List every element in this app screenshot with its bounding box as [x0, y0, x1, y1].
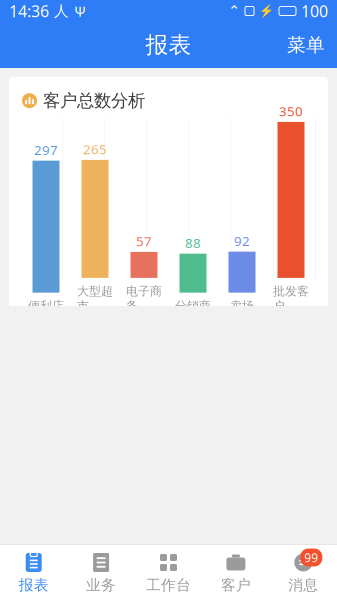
staticText: 57: [136, 232, 152, 250]
staticText: 客户总数分析: [43, 90, 145, 111]
staticText: ⌃: [228, 3, 240, 19]
staticText: 92: [234, 232, 250, 250]
staticText: 100: [301, 0, 328, 22]
button[interactable]: 报表: [0, 545, 67, 600]
staticText: 分销商: [175, 299, 211, 313]
staticText: Ψ: [74, 1, 86, 21]
staticText: 工作台: [146, 576, 191, 594]
staticText: 报表: [145, 31, 191, 59]
staticText: 297: [34, 141, 58, 159]
button[interactable]: 99: [270, 545, 337, 600]
staticText: 卖场: [230, 299, 254, 313]
staticText: 人: [54, 2, 69, 20]
staticText: 350: [279, 102, 303, 120]
button[interactable]: 客户: [202, 545, 270, 600]
staticText: 报表: [19, 576, 49, 594]
button[interactable]: 业务: [67, 545, 135, 600]
staticText: 批发客户: [273, 284, 309, 313]
staticText: 大型超市: [77, 284, 113, 313]
staticText: 265: [83, 140, 107, 158]
button[interactable]: 工作台: [135, 545, 202, 600]
staticText: ⚡: [259, 4, 274, 18]
staticText: 14:36: [9, 0, 49, 22]
staticText: 88: [185, 234, 201, 252]
staticText: 消息: [288, 576, 318, 594]
staticText: 99: [304, 549, 318, 565]
staticText: 客户: [221, 576, 251, 594]
staticText: 便利店: [28, 299, 64, 313]
button[interactable]: 菜单: [275, 25, 337, 64]
staticText: 菜单: [287, 33, 325, 56]
staticText: 电子商务: [126, 284, 162, 313]
staticText: 业务: [86, 576, 116, 594]
